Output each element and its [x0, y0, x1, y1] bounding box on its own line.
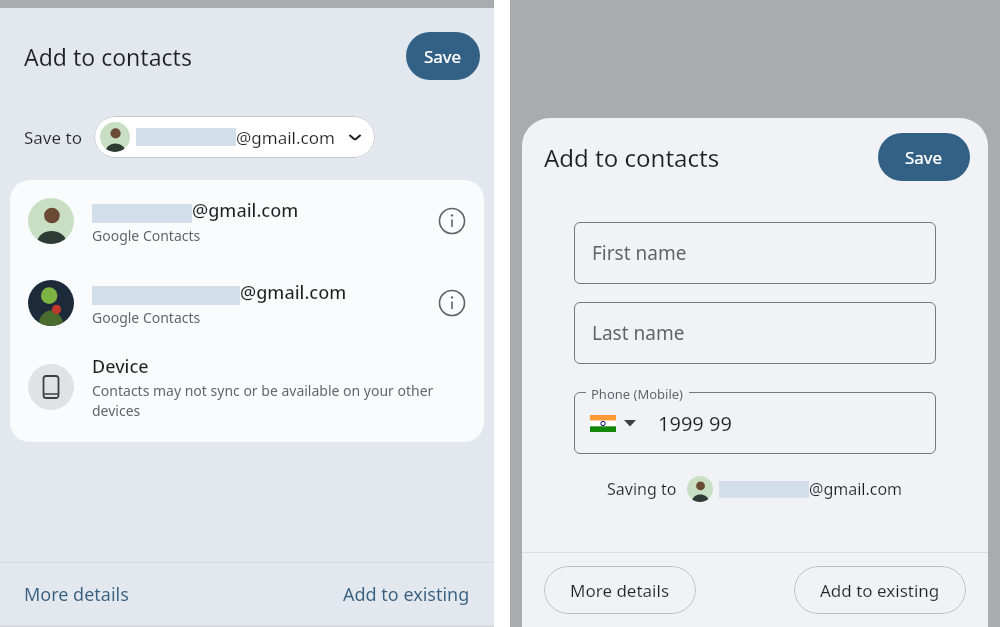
- button[interactable]: More info: [438, 289, 466, 317]
- button[interactable]: @gmail.com: [94, 116, 375, 158]
- button[interactable]: Device: [10, 344, 484, 430]
- staticText: 1999 99: [658, 410, 732, 437]
- staticText: More details: [24, 582, 129, 607]
- button[interactable]: Last name: [574, 302, 936, 364]
- button[interactable]: First name: [574, 222, 936, 284]
- staticText: Contacts may not sync or be available on…: [92, 381, 438, 420]
- staticText: Google Contacts: [92, 308, 201, 327]
- button[interactable]: Add to existing: [343, 582, 470, 607]
- staticText: Label: [83, 275, 116, 293]
- staticText: Phone (Mobile): [591, 385, 684, 403]
- staticText: Save: [905, 146, 943, 169]
- staticText: Save to: [24, 126, 82, 149]
- button[interactable]: Add to existing: [794, 566, 966, 614]
- staticText: @gmail.com: [240, 280, 347, 305]
- staticText: Add to existing: [820, 579, 940, 602]
- staticText: Save: [424, 45, 462, 68]
- staticText: Last name: [592, 320, 685, 346]
- staticText: First name: [592, 240, 687, 266]
- staticText: Add to existing: [343, 582, 470, 607]
- button[interactable]: Save: [878, 133, 970, 181]
- button[interactable]: Mobile: [86, 282, 246, 348]
- staticText: Add to contacts: [24, 41, 192, 72]
- button[interactable]: Save: [406, 32, 480, 80]
- button[interactable]: More details: [544, 566, 696, 614]
- staticText: Google Contacts: [92, 226, 201, 245]
- staticText: Device: [92, 354, 149, 379]
- staticText: Saving to: [607, 478, 677, 500]
- staticText: More details: [570, 579, 670, 602]
- button[interactable]: 1999 99: [574, 392, 936, 454]
- button[interactable]: @gmail.com: [10, 180, 484, 262]
- staticText: @gmail.com: [236, 126, 335, 149]
- button[interactable]: @gmail.com: [10, 262, 484, 344]
- button[interactable]: More details: [24, 582, 129, 607]
- staticText: @gmail.com: [809, 478, 903, 500]
- staticText: Add to contacts: [544, 141, 720, 174]
- staticText: @gmail.com: [192, 198, 299, 223]
- button[interactable]: More info: [438, 207, 466, 235]
- staticText: Mobile: [86, 302, 147, 328]
